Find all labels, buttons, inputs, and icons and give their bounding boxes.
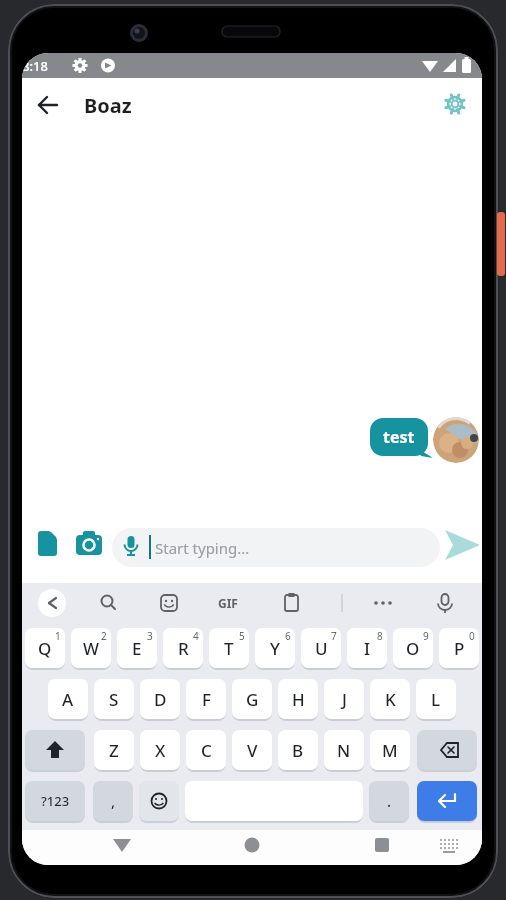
staticText: C	[201, 739, 212, 762]
button[interactable]: Start typing...	[112, 528, 440, 567]
button[interactable]: ?123	[25, 781, 85, 821]
staticText: H	[292, 688, 305, 711]
button[interactable]: Z	[94, 730, 134, 770]
button[interactable]: A	[48, 679, 88, 719]
button[interactable]	[32, 525, 64, 563]
button[interactable]: F	[186, 679, 226, 719]
button[interactable]: U	[301, 628, 341, 668]
button[interactable]	[417, 781, 477, 821]
button[interactable]: J	[324, 679, 364, 719]
staticText: ,	[111, 791, 116, 811]
button[interactable]: O	[393, 628, 433, 668]
staticText: F	[202, 688, 211, 711]
staticText: 2	[101, 629, 107, 643]
staticText: G	[246, 688, 259, 711]
button[interactable]: W	[71, 628, 111, 668]
button[interactable]: H	[278, 679, 318, 719]
button[interactable]	[25, 730, 85, 770]
staticText: Q	[38, 637, 52, 660]
staticText: W	[83, 637, 99, 660]
staticText: Y	[270, 637, 280, 660]
button[interactable]	[437, 86, 473, 122]
staticText: X	[155, 739, 166, 762]
staticText: O	[406, 637, 420, 660]
staticText: M	[382, 739, 398, 762]
staticText: T	[224, 637, 234, 660]
staticText: ?123	[41, 792, 70, 810]
staticText: S	[109, 688, 119, 711]
button[interactable]: .	[369, 781, 409, 821]
staticText: L	[431, 688, 441, 711]
button[interactable]: V	[232, 730, 272, 770]
button[interactable]: N	[324, 730, 364, 770]
button[interactable]: P	[439, 628, 479, 668]
button[interactable]	[72, 527, 106, 561]
button[interactable]: X	[140, 730, 180, 770]
button[interactable]	[30, 85, 66, 121]
staticText: E	[132, 637, 142, 660]
staticText: .	[387, 791, 392, 811]
button[interactable]: E	[117, 628, 157, 668]
button[interactable]: S	[94, 679, 134, 719]
staticText: P	[454, 637, 465, 660]
staticText: 8:18	[22, 57, 48, 75]
staticText: 8	[377, 629, 383, 643]
staticText: Boaz	[84, 92, 132, 119]
staticText: test	[383, 426, 415, 448]
staticText: 7	[331, 629, 337, 643]
staticText: D	[154, 688, 167, 711]
button[interactable]	[417, 730, 477, 770]
button[interactable]: K	[370, 679, 410, 719]
button[interactable]: M	[370, 730, 410, 770]
staticText: GIF	[218, 595, 238, 611]
button[interactable]: Q	[25, 628, 65, 668]
button[interactable]	[442, 525, 482, 565]
button[interactable]: L	[416, 679, 456, 719]
button[interactable]: C	[186, 730, 226, 770]
staticText: R	[178, 637, 189, 660]
staticText: J	[342, 688, 347, 711]
button[interactable]: R	[163, 628, 203, 668]
button[interactable]: G	[232, 679, 272, 719]
staticText: 6	[285, 629, 291, 643]
staticText: 3	[147, 629, 153, 643]
button[interactable]: I	[347, 628, 387, 668]
staticText: I	[364, 637, 371, 660]
button[interactable]: D	[140, 679, 180, 719]
staticText: V	[247, 739, 258, 762]
button[interactable]: B	[278, 730, 318, 770]
staticText: 4	[193, 629, 199, 643]
staticText: Start typing...	[155, 538, 250, 558]
staticText: U	[315, 637, 328, 660]
staticText: 5	[239, 629, 245, 643]
staticText: A	[62, 688, 74, 711]
staticText: 0	[469, 629, 475, 643]
button[interactable]: Y	[255, 628, 295, 668]
staticText: N	[337, 739, 351, 762]
staticText: Z	[109, 739, 119, 762]
button[interactable]: ,	[93, 781, 133, 821]
staticText: K	[385, 688, 396, 711]
button[interactable]	[139, 781, 179, 821]
staticText: 9	[423, 629, 429, 643]
staticText: B	[292, 739, 304, 762]
button[interactable]: T	[209, 628, 249, 668]
staticText: 1	[55, 629, 61, 643]
